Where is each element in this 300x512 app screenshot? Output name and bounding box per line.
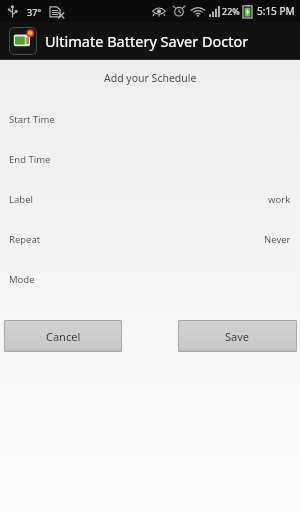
button[interactable]: Cancel [4,320,122,352]
button[interactable]: Mode [0,259,300,299]
button[interactable]: Start Time [0,99,300,139]
staticText: Cancel [46,329,81,344]
button[interactable]: Repeat [0,219,300,259]
staticText: work [268,193,291,206]
button[interactable]: Save [178,320,297,352]
other: App icon [9,27,37,55]
staticText: Repeat [9,233,41,246]
staticText: Label [9,193,33,206]
staticText: Ultimate Battery Saver Doctor [45,31,249,51]
staticText: Start Time [9,113,55,126]
staticText: Never [264,233,291,246]
staticText: Save [225,329,250,344]
staticText: 37° [27,6,42,18]
staticText: Add your Schedule [104,71,197,85]
button[interactable]: End Time [0,139,300,179]
staticText: 22% [222,5,240,17]
staticText: 5:15 PM [257,4,295,18]
button[interactable]: Label [0,179,300,219]
staticText: Mode [9,273,35,286]
staticText: End Time [9,153,51,166]
